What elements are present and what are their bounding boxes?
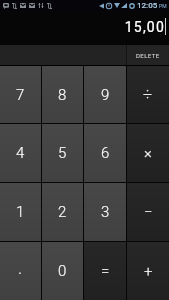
button[interactable]: ÷	[127, 66, 169, 123]
button[interactable]: +	[127, 242, 169, 300]
staticText: 12:05	[137, 1, 158, 10]
button[interactable]: 9	[84, 66, 126, 123]
button[interactable]: DELETE	[127, 45, 169, 65]
button[interactable]: 5	[42, 124, 83, 182]
button[interactable]: =	[84, 242, 126, 300]
button[interactable]: 8	[42, 66, 83, 123]
staticText: 8	[58, 86, 67, 104]
staticText: −	[144, 203, 153, 221]
button[interactable]: 3	[84, 183, 126, 241]
staticText: 15,00	[124, 19, 165, 35]
button[interactable]: 7	[0, 66, 41, 123]
button[interactable]: ×	[127, 124, 169, 182]
button[interactable]: 6	[84, 124, 126, 182]
button[interactable]: 4	[0, 124, 41, 182]
staticText: 1	[16, 203, 25, 221]
button[interactable]: 0	[42, 242, 83, 300]
staticText: 4	[16, 144, 25, 162]
button[interactable]: −	[127, 183, 169, 241]
staticText: =	[101, 262, 110, 280]
staticText: PM	[159, 3, 167, 9]
staticText: DELETE	[136, 52, 160, 59]
other: Status bar	[0, 0, 169, 11]
staticText: 0	[58, 262, 67, 280]
staticText: 2	[58, 203, 67, 221]
staticText: ×	[144, 144, 152, 162]
button[interactable]: 1	[0, 183, 41, 241]
staticText: 9	[101, 86, 110, 104]
staticText: ÷	[143, 85, 153, 104]
staticText: 3	[101, 203, 110, 221]
button[interactable]: .	[0, 242, 41, 300]
staticText: 6	[101, 144, 110, 162]
staticText: 5	[58, 144, 67, 162]
staticText: 7	[16, 86, 25, 104]
button[interactable]: 2	[42, 183, 83, 241]
staticText: .	[18, 258, 23, 278]
staticText: +	[144, 262, 153, 280]
